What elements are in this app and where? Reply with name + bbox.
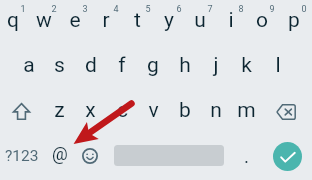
- staticText: z: [54, 98, 65, 123]
- button[interactable]: l: [262, 43, 293, 88]
- button[interactable]: r: [90, 0, 121, 43]
- button[interactable]: q: [0, 0, 28, 43]
- staticText: j: [213, 53, 219, 78]
- button[interactable]: Shift: [4, 89, 38, 134]
- button[interactable]: v: [138, 88, 169, 133]
- button[interactable]: t: [122, 0, 153, 43]
- button[interactable]: j: [200, 43, 231, 88]
- button[interactable]: u: [184, 0, 215, 43]
- button[interactable]: s: [44, 43, 75, 88]
- button[interactable]: m: [231, 88, 262, 133]
- button[interactable]: i: [215, 0, 246, 43]
- button[interactable]: a: [13, 43, 44, 88]
- button[interactable]: o: [246, 0, 277, 43]
- staticText: k: [241, 53, 252, 78]
- button[interactable]: w: [28, 0, 59, 43]
- staticText: e: [69, 8, 81, 33]
- button[interactable]: g: [137, 43, 168, 88]
- staticText: 5: [145, 4, 151, 15]
- staticText: 7: [207, 4, 213, 15]
- button[interactable]: .: [232, 133, 262, 178]
- staticText: 9: [269, 4, 275, 15]
- staticText: l: [275, 53, 281, 78]
- button[interactable]: p: [278, 0, 309, 43]
- button[interactable]: Enter: [273, 142, 302, 171]
- staticText: i: [228, 8, 234, 33]
- staticText: q: [7, 8, 19, 33]
- staticText: 4: [113, 4, 119, 15]
- button[interactable]: e: [59, 0, 90, 43]
- staticText: n: [210, 98, 222, 123]
- staticText: c: [117, 98, 128, 123]
- staticText: 0: [301, 4, 307, 15]
- staticText: @: [52, 144, 68, 165]
- button[interactable]: n: [200, 88, 231, 133]
- staticText: 8: [238, 4, 244, 15]
- staticText: v: [148, 98, 159, 123]
- button[interactable]: h: [169, 43, 200, 88]
- button[interactable]: z: [44, 88, 75, 133]
- staticText: w: [36, 8, 52, 33]
- staticText: d: [85, 53, 97, 78]
- staticText: 3: [82, 4, 88, 15]
- staticText: p: [288, 8, 300, 33]
- staticText: r: [102, 8, 110, 33]
- button[interactable]: @: [45, 132, 75, 177]
- staticText: m: [237, 98, 256, 123]
- button[interactable]: c: [107, 88, 138, 133]
- button[interactable]: Backspace: [269, 89, 303, 134]
- staticText: x: [85, 98, 96, 123]
- staticText: o: [256, 8, 268, 33]
- staticText: b: [179, 98, 191, 123]
- staticText: s: [54, 53, 65, 78]
- staticText: u: [194, 8, 206, 33]
- button[interactable]: Symbols: [1, 133, 43, 178]
- button[interactable]: x: [75, 88, 106, 133]
- staticText: 1: [20, 4, 26, 15]
- staticText: h: [179, 53, 191, 78]
- staticText: y: [164, 8, 174, 33]
- button[interactable]: k: [231, 43, 262, 88]
- staticText: 6: [176, 4, 182, 15]
- button[interactable]: b: [169, 88, 200, 133]
- button[interactable]: Emoji: [75, 133, 105, 178]
- staticText: g: [147, 53, 159, 78]
- staticText: a: [23, 53, 35, 78]
- button[interactable]: d: [75, 43, 106, 88]
- staticText: t: [134, 8, 141, 33]
- staticText: f: [118, 53, 126, 78]
- staticText: 2: [51, 4, 57, 15]
- staticText: ?123: [5, 147, 39, 165]
- staticText: .: [244, 145, 250, 167]
- button[interactable]: f: [106, 43, 137, 88]
- button[interactable]: y: [153, 0, 184, 43]
